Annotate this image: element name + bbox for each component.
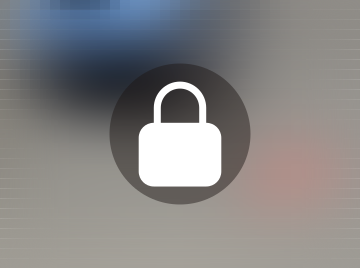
button[interactable]: Content locked — [109, 63, 250, 204]
